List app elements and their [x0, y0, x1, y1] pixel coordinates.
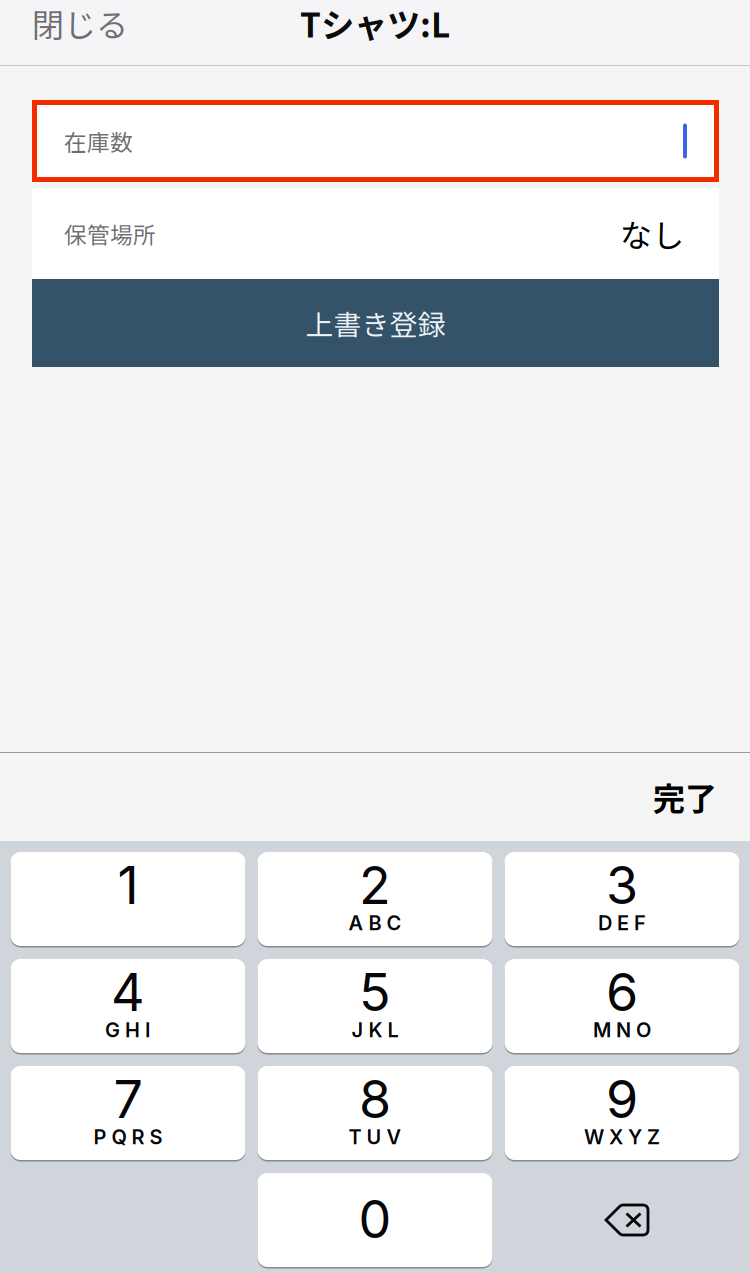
- button[interactable]: 上書き登録: [32, 279, 719, 367]
- button[interactable]: 0: [257, 1173, 492, 1267]
- staticText: PQRS: [93, 1125, 162, 1149]
- button[interactable]: 閉じる: [0, 0, 146, 56]
- staticText: 8: [359, 1067, 391, 1130]
- staticText: 5: [359, 960, 391, 1023]
- button[interactable]: 3: [504, 852, 739, 946]
- staticText: GHI: [105, 1018, 151, 1042]
- staticText: 上書き登録: [305, 303, 445, 343]
- button[interactable]: 6: [504, 959, 739, 1053]
- staticText: 4: [111, 960, 145, 1023]
- button[interactable]: 1: [10, 852, 245, 946]
- staticText: 1: [117, 853, 138, 916]
- staticText: 在庫数: [64, 125, 133, 157]
- staticText: 0: [358, 1187, 391, 1250]
- button[interactable]: 2: [257, 852, 492, 946]
- button[interactable]: 9: [504, 1066, 739, 1160]
- staticText: MNO: [593, 1018, 651, 1042]
- button[interactable]: 保管場所: [32, 188, 719, 279]
- button[interactable]: 7: [10, 1066, 245, 1160]
- staticText: 9: [606, 1067, 638, 1130]
- button[interactable]: 8: [257, 1066, 492, 1160]
- staticText: なし: [620, 210, 684, 257]
- staticText: 閉じる: [32, 0, 128, 46]
- staticText: 6: [606, 960, 638, 1023]
- staticText: 保管場所: [64, 217, 156, 250]
- button[interactable]: 在庫数: [32, 100, 719, 182]
- staticText: DEF: [598, 911, 646, 935]
- staticText: 3: [606, 853, 638, 916]
- button[interactable]: 5: [257, 959, 492, 1053]
- staticText: 7: [113, 1067, 142, 1130]
- button[interactable]: Delete: [504, 1173, 739, 1267]
- staticText: WXYZ: [584, 1125, 660, 1149]
- staticText: ABC: [348, 911, 401, 935]
- staticText: JKL: [351, 1018, 398, 1042]
- staticText: TUV: [348, 1125, 401, 1149]
- button[interactable]: 完了: [629, 761, 750, 832]
- button[interactable]: 4: [10, 959, 245, 1053]
- staticText: 完了: [653, 773, 717, 820]
- staticText: 2: [359, 853, 391, 916]
- staticText: Tシャツ:L: [300, 0, 450, 47]
